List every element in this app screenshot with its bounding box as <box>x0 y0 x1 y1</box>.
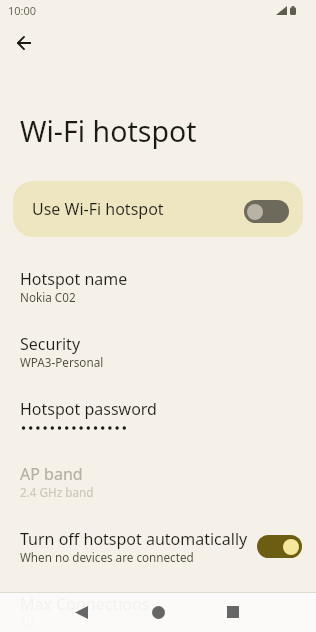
button[interactable]: AP band <box>0 456 316 516</box>
staticText: Nokia C02 <box>20 289 76 305</box>
button[interactable]: Use Wi-Fi hotspot <box>13 181 303 237</box>
button[interactable]: Security <box>0 326 316 386</box>
staticText: Wi-Fi hotspot <box>20 112 197 151</box>
button[interactable]: Back <box>4 23 44 63</box>
staticText: 10:00 <box>8 3 37 18</box>
button[interactable]: Max Connections <box>0 586 316 632</box>
staticText: Use Wi-Fi hotspot <box>32 198 164 220</box>
button[interactable]: Hotspot password <box>0 391 316 451</box>
button[interactable]: Hotspot name <box>0 261 316 321</box>
staticText: Hotspot name <box>20 268 128 290</box>
staticText: 2.4 GHz band <box>20 484 94 500</box>
button[interactable]: Recents <box>213 592 253 632</box>
staticText: WPA3-Personal <box>20 354 104 370</box>
button[interactable]: Back <box>61 592 101 632</box>
button[interactable]: Home <box>138 592 178 632</box>
button[interactable]: Turn off hotspot automatically <box>0 521 316 581</box>
staticText: AP band <box>20 463 83 485</box>
button[interactable]: Toggle <box>257 535 302 558</box>
staticText: Turn off hotspot automatically <box>20 528 248 550</box>
staticText: Hotspot password <box>20 398 157 420</box>
staticText: When no devices are connected <box>20 549 194 565</box>
staticText: Max Connections <box>20 593 150 615</box>
button[interactable]: Toggle <box>244 200 289 223</box>
staticText: Security <box>20 333 81 355</box>
